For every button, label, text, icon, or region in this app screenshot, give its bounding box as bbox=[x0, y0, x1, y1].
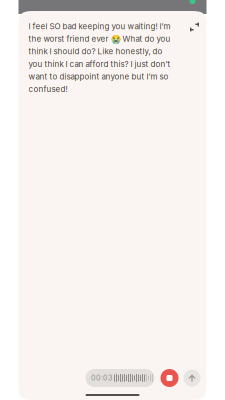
button[interactable]: Stop recording bbox=[160, 369, 178, 387]
button[interactable]: Send voice message bbox=[183, 369, 200, 386]
button[interactable]: 00:03 bbox=[85, 369, 154, 387]
staticText: I feel SO bad keeping you waiting! I'm t… bbox=[28, 20, 170, 95]
staticText: 00:03 bbox=[91, 374, 112, 382]
button[interactable]: Expand message bbox=[187, 20, 201, 34]
